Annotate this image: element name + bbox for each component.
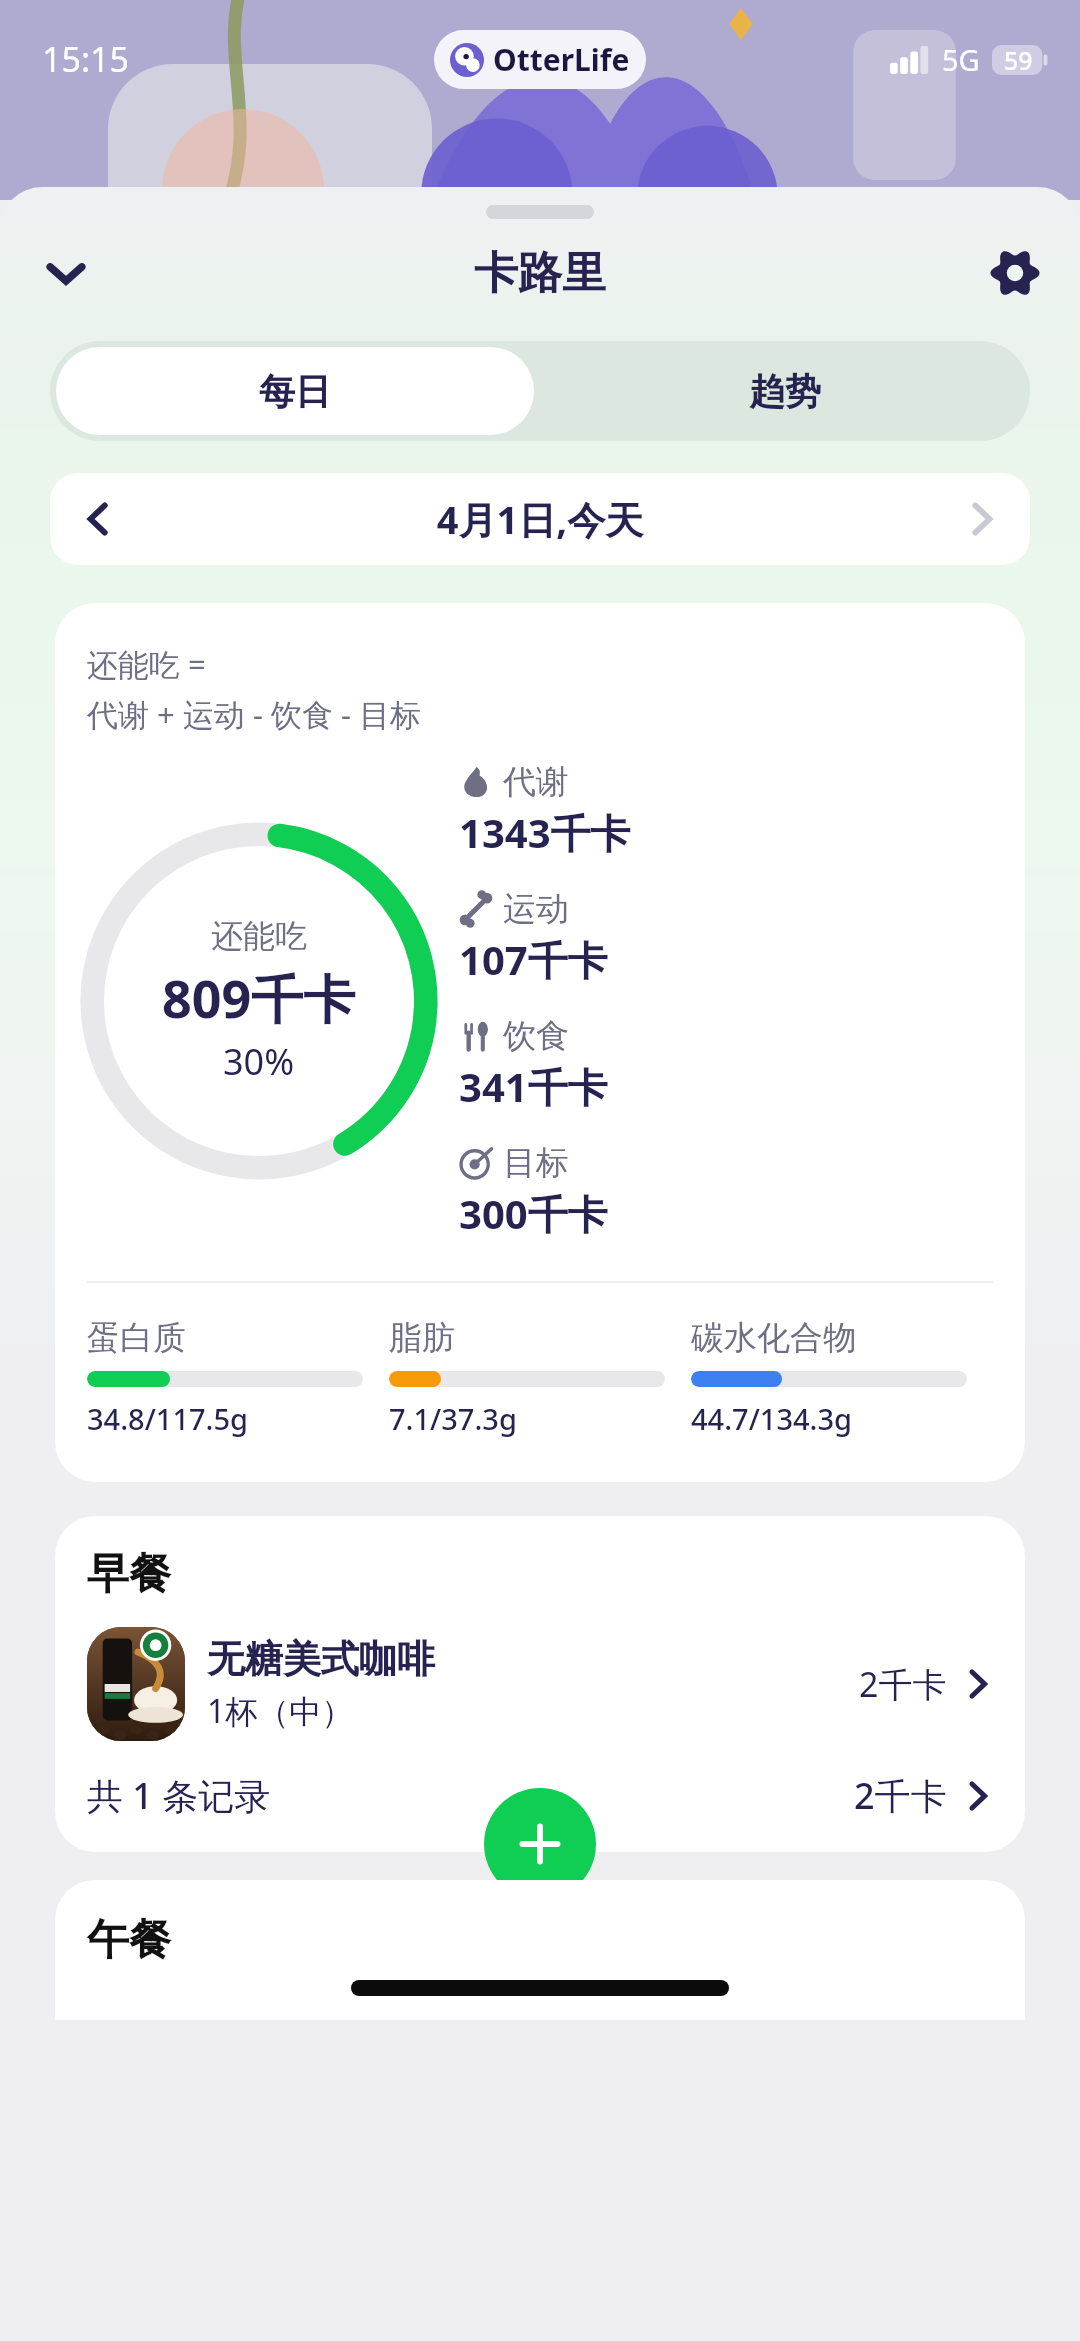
staticText: 碳水化合物 <box>691 1317 856 1359</box>
staticText: OtterLife <box>493 39 630 80</box>
staticText: 共 1 条记录 <box>87 1771 271 1820</box>
button[interactable]: Settings <box>976 234 1054 312</box>
staticText: 809千卡 <box>162 962 356 1033</box>
staticText: 7.1/37.3g <box>389 1399 517 1438</box>
button[interactable]: Previous day <box>50 473 146 565</box>
staticText: 44.7/134.3g <box>691 1399 853 1438</box>
staticText: 卡路里 <box>474 246 606 301</box>
staticText: 5G <box>942 40 980 79</box>
staticText: 代谢 + 运动 - 饮食 - 目标 <box>87 693 422 735</box>
staticText: 4月1日,今天 <box>146 493 934 545</box>
staticText: 无糖美式咖啡 <box>207 1635 435 1683</box>
button[interactable]: Next day <box>934 473 1030 565</box>
button[interactable]: Collapse <box>28 235 104 311</box>
button[interactable]: 共 1 条记录 <box>55 1771 1025 1820</box>
staticText: 脂肪 <box>389 1317 455 1359</box>
staticText: 15:15 <box>42 36 129 82</box>
staticText: 59 <box>1004 43 1033 77</box>
staticText: 还能吃 <box>211 916 307 956</box>
button[interactable]: Add food <box>484 1788 596 1900</box>
button[interactable]: 每日 <box>56 347 534 435</box>
staticText: 蛋白质 <box>87 1317 186 1359</box>
staticText: 饮食 <box>503 1015 569 1057</box>
staticText: 341千卡 <box>459 1059 608 1114</box>
staticText: 1343千卡 <box>459 805 631 860</box>
staticText: 趋势 <box>749 369 821 414</box>
staticText: 34.8/117.5g <box>87 1399 249 1438</box>
staticText: 还能吃 = <box>87 643 206 685</box>
staticText: 1杯（中） <box>207 1689 354 1733</box>
staticText: 每日 <box>259 369 331 414</box>
button[interactable]: 趋势 <box>540 341 1030 441</box>
staticText: 运动 <box>503 888 569 930</box>
button[interactable]: 无糖美式咖啡 <box>55 1627 1025 1741</box>
staticText: 300千卡 <box>459 1186 608 1241</box>
staticText: 午餐 <box>87 1914 171 1967</box>
staticText: 107千卡 <box>459 932 608 987</box>
staticText: 30% <box>223 1037 295 1086</box>
staticText: 2千卡 <box>854 1771 947 1820</box>
staticText: 2千卡 <box>859 1661 947 1707</box>
staticText: 代谢 <box>503 761 569 803</box>
staticText: 早餐 <box>87 1548 171 1601</box>
staticText: 目标 <box>503 1142 569 1184</box>
